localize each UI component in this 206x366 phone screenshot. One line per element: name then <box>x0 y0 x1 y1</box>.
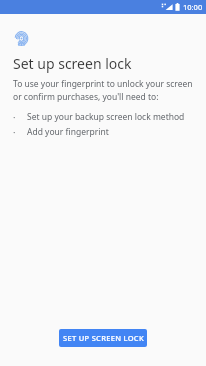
other: Battery <box>175 2 180 12</box>
staticText: To use your fingerprint to unlock your s… <box>13 78 193 103</box>
other: Mobile signal 4G <box>161 2 173 12</box>
staticText: · <box>13 111 16 123</box>
staticText: · <box>13 126 16 138</box>
staticText: 10:00 <box>183 2 203 12</box>
staticText: Set up screen lock <box>13 54 132 73</box>
button[interactable]: SET UP SCREEN LOCK <box>59 329 147 347</box>
staticText: Set up your backup screen lock method <box>27 111 185 123</box>
staticText: SET UP SCREEN LOCK <box>63 333 144 343</box>
staticText: Add your fingerprint <box>27 126 109 138</box>
